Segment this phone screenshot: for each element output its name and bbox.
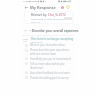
staticText: liked most	[30, 66, 43, 70]
staticText: responses	[31, 40, 43, 43]
staticText: Q1 · 1pt	[24, 29, 33, 32]
button[interactable]: Back	[24, 4, 30, 10]
staticText: info	[23, 40, 27, 43]
staticText: What is your favourite colour	[30, 43, 66, 47]
button[interactable]	[24, 11, 73, 24]
staticText: Thanks for taking part in survey	[30, 76, 69, 80]
staticText: Note	[23, 38, 29, 41]
staticText: Make sure to save response	[31, 17, 64, 20]
button[interactable]: How likely are you to recommend	[30, 57, 71, 61]
staticText: ▣ ◆ ▣◆ ◈ ▮	[58, 0, 71, 3]
staticText: after ed	[31, 20, 41, 23]
staticText: Receive by	[31, 13, 48, 17]
button[interactable]: Favourite	[59, 4, 65, 10]
button[interactable]: Any other feedback for our team	[30, 71, 70, 75]
staticText: This form is no longer accepting	[31, 37, 74, 41]
button[interactable]: Please describe your experience	[30, 48, 70, 52]
staticText: Tell us more about what you	[30, 62, 65, 66]
staticText: Please describe your experience	[30, 48, 70, 52]
staticText: My Response	[30, 5, 56, 11]
staticText: Chu_Vi 2012	[48, 13, 66, 17]
button[interactable]: Tell us more about what you	[30, 62, 65, 66]
button[interactable]: Thanks for taking part in survey	[30, 76, 69, 80]
staticText: Any other feedback for our team	[30, 71, 70, 75]
button[interactable]: Account	[65, 4, 71, 10]
button[interactable]: with our service team	[30, 52, 57, 56]
staticText: Describe your overall experienc	[32, 29, 79, 33]
staticText: How likely are you to recommend	[30, 57, 71, 61]
button[interactable]: liked most	[30, 66, 43, 70]
staticText: 11:35 ▪ Inbox ◈ ▣ ◆ ▫	[23, 0, 47, 3]
staticText: Done	[66, 30, 72, 33]
button[interactable]: What is your favourite colour	[30, 43, 66, 47]
staticText: with our service team	[30, 52, 57, 56]
staticText: ←	[25, 5, 29, 10]
